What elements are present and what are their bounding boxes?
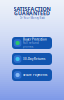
button[interactable]: 30-Day Returns [12,53,52,65]
staticText: Buyer Protection [23,38,47,41]
staticText: GUARANTEED [14,10,50,17]
button[interactable]: Buyer Protection [12,37,52,49]
staticText: Secure Payments [23,73,47,77]
staticText: Or Your Money Back [19,16,44,20]
button[interactable]: Secure Payments [12,69,52,81]
staticText: Full refund promise [23,41,39,48]
staticText: SATISFACTION [13,5,50,13]
staticText: 30-Day Returns [23,57,45,61]
